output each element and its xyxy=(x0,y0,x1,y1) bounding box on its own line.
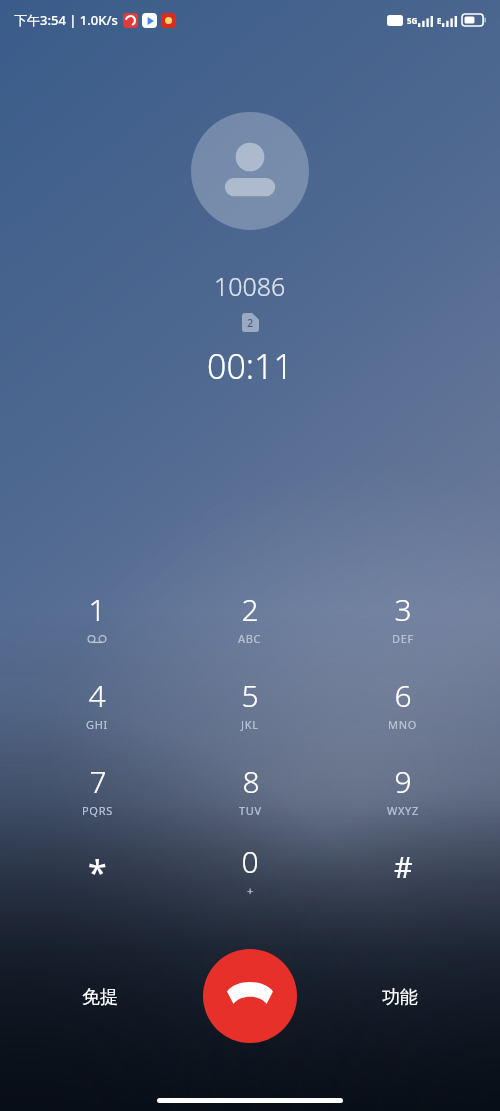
staticText: MNO xyxy=(388,717,418,732)
button[interactable]: # xyxy=(355,847,451,907)
button[interactable]: 8 xyxy=(202,761,298,827)
button[interactable]: 4 xyxy=(86,675,108,732)
button[interactable]: 2 xyxy=(238,589,262,646)
staticText: * xyxy=(88,849,107,895)
staticText: ABC xyxy=(238,631,262,646)
staticText: E xyxy=(437,15,442,26)
button[interactable]: 0 xyxy=(241,841,259,898)
button[interactable]: 3 xyxy=(355,589,451,655)
button[interactable]: 0 xyxy=(202,841,298,907)
button[interactable]: 8 xyxy=(239,761,262,818)
button[interactable]: 功能 xyxy=(355,977,445,1017)
button[interactable]: 5 xyxy=(202,675,298,741)
staticText: WXYZ xyxy=(387,803,419,818)
button[interactable]: 7 xyxy=(82,761,113,818)
staticText: 7 xyxy=(89,761,107,802)
staticText: 5G xyxy=(407,15,418,26)
staticText: JKL xyxy=(241,717,259,732)
staticText: GHI xyxy=(86,717,108,732)
staticText: 2 xyxy=(241,589,259,630)
staticText: 8 xyxy=(242,761,260,802)
staticText: 下午3:54 | 1.0K/s xyxy=(14,11,118,29)
staticText: # xyxy=(394,847,413,886)
button[interactable]: * xyxy=(49,849,145,909)
staticText: 1 xyxy=(88,589,106,630)
staticText: PQRS xyxy=(82,803,113,818)
button[interactable]: End call xyxy=(203,949,297,1043)
staticText: 4 xyxy=(88,675,106,716)
button[interactable]: 4 xyxy=(49,675,145,741)
staticText: 功能 xyxy=(382,986,418,1009)
button[interactable]: 6 xyxy=(355,675,451,741)
staticText: TUV xyxy=(239,803,262,818)
button[interactable]: 9 xyxy=(387,761,419,818)
button[interactable]: 6 xyxy=(388,675,418,732)
button[interactable]: 1 xyxy=(86,589,108,643)
staticText: 6 xyxy=(394,675,412,716)
staticText: 0 xyxy=(241,841,259,882)
staticText: 9 xyxy=(394,761,412,802)
button[interactable]: 1 xyxy=(49,589,145,655)
staticText: 10086 xyxy=(214,269,286,303)
button[interactable]: 免提 xyxy=(55,977,145,1017)
button[interactable]: 9 xyxy=(355,761,451,827)
staticText: 00:11 xyxy=(207,343,293,389)
staticText: 3 xyxy=(394,589,412,630)
staticText: 2 xyxy=(247,315,254,330)
staticText: 5 xyxy=(241,675,259,716)
staticText: DEF xyxy=(392,631,414,646)
button[interactable]: 5 xyxy=(241,675,259,732)
button[interactable]: 2 xyxy=(202,589,298,655)
button[interactable]: 3 xyxy=(392,589,414,646)
button[interactable]: 7 xyxy=(49,761,145,827)
staticText: 免提 xyxy=(82,986,118,1009)
staticText: + xyxy=(247,883,254,898)
